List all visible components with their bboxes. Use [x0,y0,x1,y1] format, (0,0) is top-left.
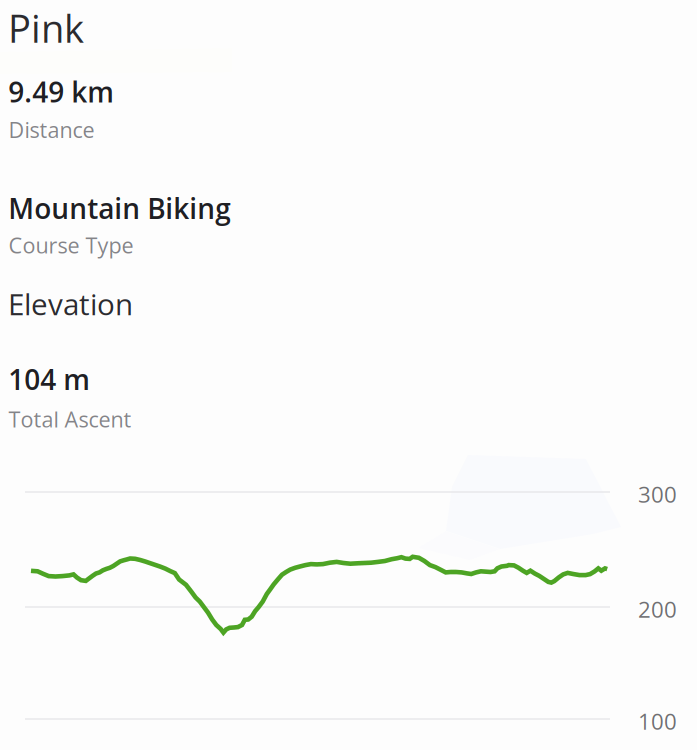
button[interactable]: Elevation profile chart [0,0,697,750]
staticText: Mountain Biking [8,189,231,227]
staticText: Course Type [8,230,133,260]
staticText: 200 [638,594,677,624]
staticText: 9.49 km [8,72,114,111]
button[interactable]: 104 m [0,0,697,750]
staticText: Distance [8,115,94,144]
staticText: Elevation [8,283,133,324]
staticText: 300 [638,479,677,509]
staticText: Total Ascent [8,404,131,434]
staticText: 100 [638,706,677,736]
button[interactable]: Mountain Biking [0,0,697,750]
staticText: 104 m [8,360,90,398]
staticText: Pink [8,2,84,54]
button[interactable]: 9.49 km [0,0,697,750]
